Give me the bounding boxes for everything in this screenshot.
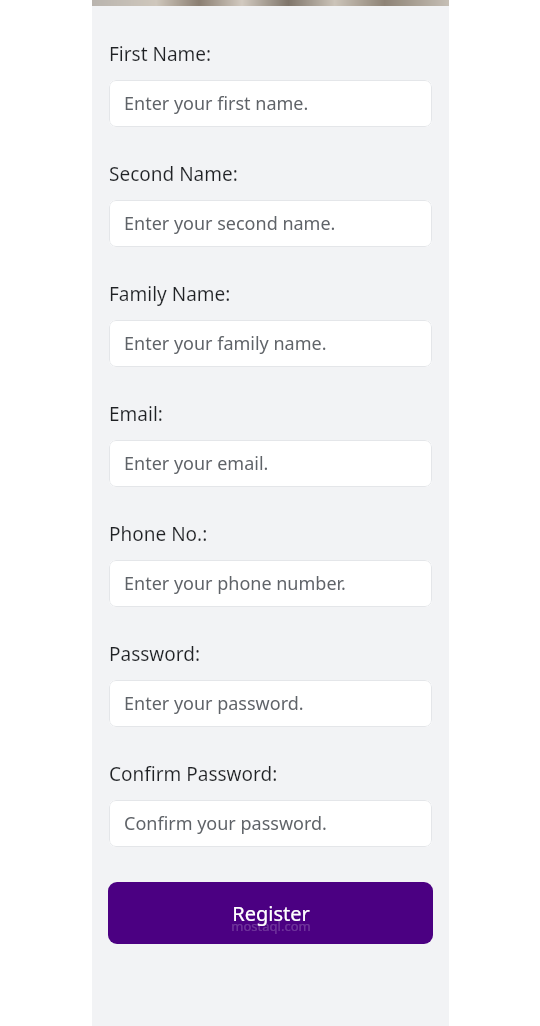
staticText: Email:: [109, 401, 163, 427]
button[interactable]: Enter your second name.: [109, 200, 432, 247]
staticText: Confirm your password.: [124, 811, 327, 836]
staticText: mostaql.com: [231, 917, 311, 935]
staticText: Enter your family name.: [124, 331, 327, 356]
staticText: Enter your first name.: [124, 91, 309, 116]
button[interactable]: Enter your family name.: [109, 320, 432, 367]
staticText: Enter your email.: [124, 451, 269, 476]
staticText: Password:: [109, 641, 201, 667]
staticText: Phone No.:: [109, 521, 208, 547]
button[interactable]: mostaql.com: [108, 882, 433, 944]
staticText: Confirm Password:: [109, 761, 278, 787]
button[interactable]: Enter your phone number.: [109, 560, 432, 607]
staticText: Enter your phone number.: [124, 571, 346, 596]
button[interactable]: Enter your first name.: [109, 80, 432, 127]
staticText: Second Name:: [109, 161, 238, 187]
staticText: Enter your password.: [124, 691, 304, 716]
button[interactable]: Enter your password.: [109, 680, 432, 727]
staticText: First Name:: [109, 41, 212, 67]
button[interactable]: Enter your email.: [109, 440, 432, 487]
staticText: Enter your second name.: [124, 211, 336, 236]
button[interactable]: Confirm your password.: [109, 800, 432, 847]
staticText: Register: [232, 900, 310, 927]
staticText: Family Name:: [109, 281, 231, 307]
